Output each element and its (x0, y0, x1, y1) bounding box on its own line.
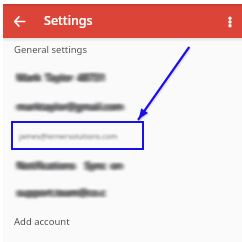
button[interactable]: Add account (14, 215, 70, 228)
staticText: marktaylor@gmail.com (17, 100, 124, 113)
staticText: General settings (14, 43, 87, 56)
staticText: Mark Taylor 48731 (17, 71, 105, 84)
staticText: Mark Taylor 48731 (17, 71, 105, 84)
staticText: Mark Taylor 48731 (17, 71, 105, 84)
button[interactable]: Back (8, 10, 31, 33)
staticText: marktaylor@gmail.com (17, 100, 124, 113)
staticText: Notifications Sync on (17, 159, 123, 172)
staticText: support.team@co.c (17, 186, 106, 199)
button[interactable]: james@lernersolutions.com (11, 121, 144, 150)
staticText: support.team@co.c (17, 186, 106, 199)
staticText: Notifications Sync on (17, 159, 123, 172)
staticText: support.team@co.c (17, 186, 106, 199)
staticText: marktaylor@gmail.com (17, 100, 124, 113)
staticText: support.team@co.c (17, 186, 106, 199)
button[interactable]: support.team@co.c (17, 186, 106, 199)
button[interactable]: Mark Taylor 48731 (17, 71, 105, 84)
staticText: Notifications Sync on (17, 159, 123, 172)
button[interactable]: Notifications Sync on (17, 159, 123, 172)
button[interactable]: More options (218, 10, 241, 33)
staticText: james@lernersolutions.com (19, 131, 118, 141)
staticText: marktaylor@gmail.com (17, 100, 124, 113)
staticText: Mark Taylor 48731 (17, 71, 105, 84)
button[interactable]: marktaylor@gmail.com (17, 100, 124, 113)
staticText: Settings (44, 12, 93, 29)
staticText: Notifications Sync on (17, 159, 123, 172)
